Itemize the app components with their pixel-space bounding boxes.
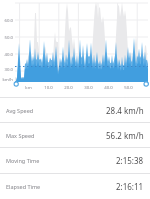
staticText: 56.2 km/h (106, 130, 144, 141)
staticText: km (25, 84, 32, 90)
staticText: 2:16:11 (116, 181, 144, 192)
staticText: 50.0 (124, 84, 133, 90)
staticText: 50.0 (4, 34, 13, 40)
staticText: 30.0 (4, 66, 13, 72)
staticText: Moving Time (6, 157, 40, 164)
staticText: 2:15:38 (116, 155, 144, 166)
staticText: 30.0 (84, 84, 93, 90)
button[interactable]: Avg Speed (0, 97, 150, 122)
staticText: 20.0 (64, 84, 73, 90)
staticText: 10.0 (44, 84, 53, 90)
staticText: 60.0 (4, 17, 13, 23)
staticText: km/h (2, 76, 13, 82)
staticText: Avg Speed (6, 107, 34, 114)
staticText: 40.0 (104, 84, 113, 90)
staticText: Max Speed (6, 132, 35, 139)
button[interactable]: Moving Time (0, 147, 150, 173)
staticText: 40.0 (4, 51, 13, 57)
button[interactable]: Elapsed Time (0, 173, 150, 199)
button[interactable]: Max Speed (0, 122, 150, 147)
staticText: 28.4 km/h (106, 105, 144, 116)
staticText: Elapsed Time (6, 183, 41, 190)
